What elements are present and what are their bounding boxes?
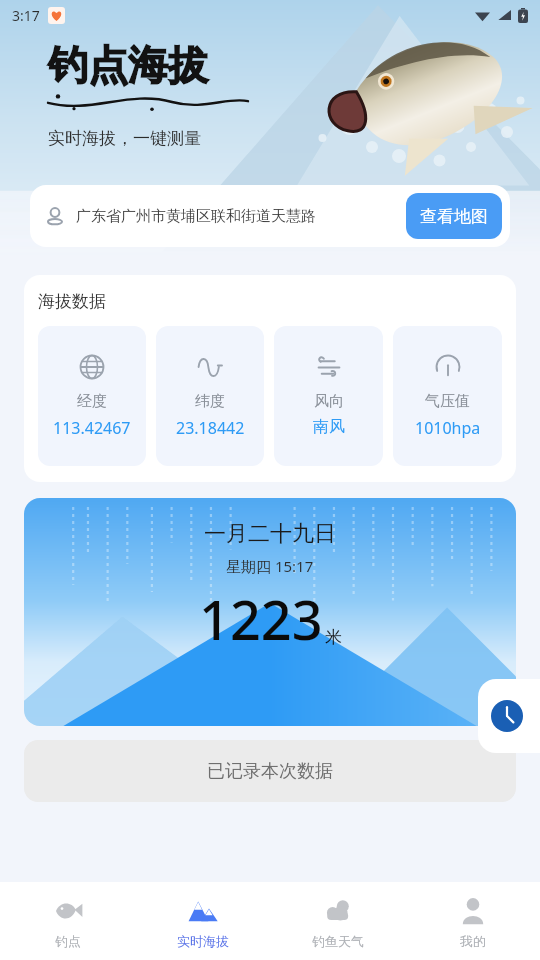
staticText: 3:17 (12, 6, 40, 25)
staticText: 我的 (460, 933, 486, 949)
staticText: 米 (325, 627, 342, 648)
button[interactable]: 已记录本次数据 (24, 740, 516, 802)
staticText: 海拔数据 (38, 291, 106, 312)
button[interactable]: 实时海拔 (135, 882, 270, 960)
button[interactable]: 广东省广州市黄埔区联和街道天慧路 (30, 185, 510, 247)
button[interactable]: 查看地图 (406, 193, 502, 239)
button[interactable]: 我的 (405, 882, 540, 960)
staticText: 纬度 (195, 392, 225, 411)
button[interactable]: 经度 (38, 326, 146, 466)
staticText: 钓点 (55, 933, 81, 949)
staticText: 实时海拔 (177, 933, 229, 949)
staticText: 南风 (313, 417, 345, 437)
button[interactable]: 钓点 (0, 882, 135, 960)
button[interactable]: 历史记录 (478, 679, 540, 753)
button[interactable]: 钓鱼天气 (270, 882, 405, 960)
button[interactable]: 气压值 (393, 326, 502, 466)
staticText: 经度 (77, 392, 107, 411)
staticText: 一月二十九日 (204, 520, 336, 548)
staticText: 1010hpa (415, 417, 481, 439)
staticText: 已记录本次数据 (207, 760, 333, 783)
staticText: 23.18442 (176, 417, 245, 439)
staticText: 1223 (199, 582, 323, 656)
staticText: 广东省广州市黄埔区联和街道天慧路 (76, 207, 400, 226)
button[interactable]: 一月二十九日 (24, 498, 516, 726)
staticText: 气压值 (425, 392, 470, 411)
button[interactable]: 纬度 (156, 326, 264, 466)
staticText: 钓点海拔 (48, 40, 208, 90)
staticText: 113.42467 (53, 417, 131, 439)
staticText: 实时海拔，一键测量 (48, 128, 201, 149)
staticText: 星期四 15:17 (226, 556, 314, 576)
staticText: 查看地图 (420, 206, 488, 227)
staticText: 风向 (314, 392, 344, 411)
button[interactable]: 风向 (274, 326, 383, 466)
staticText: 钓鱼天气 (312, 933, 364, 949)
